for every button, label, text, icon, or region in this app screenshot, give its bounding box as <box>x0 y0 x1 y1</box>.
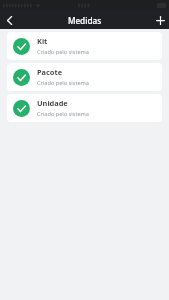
staticText: Unidade <box>37 98 68 108</box>
button[interactable]: Unidade <box>7 94 162 122</box>
staticText: Medidas <box>0 15 169 26</box>
staticText: Kit <box>37 36 48 46</box>
button[interactable]: Back <box>0 11 18 29</box>
staticText: Pacote <box>37 67 63 77</box>
staticText: Criado pelo sistema <box>37 48 89 56</box>
button[interactable]: Pacote <box>7 63 162 91</box>
staticText: Criado pelo sistema <box>37 79 89 87</box>
button[interactable]: Add measure <box>151 11 169 29</box>
button[interactable]: Kit <box>7 32 162 60</box>
staticText: Criado pelo sistema <box>37 110 89 118</box>
